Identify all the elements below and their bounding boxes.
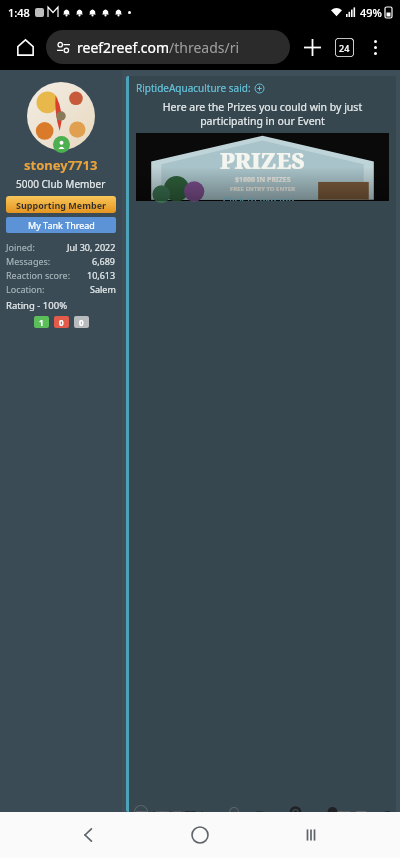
- button[interactable]: Tabs: 24: [328, 31, 360, 63]
- staticText: 10,613: [87, 269, 116, 281]
- staticText: 6,689: [92, 255, 116, 267]
- staticText: stoney7713: [24, 156, 98, 174]
- staticText: /threads/ri: [169, 38, 240, 57]
- staticText: 0: [59, 317, 64, 328]
- staticText: Rating - 100%: [6, 299, 68, 312]
- button[interactable]: Home: [178, 813, 222, 857]
- button[interactable]: Back: [67, 813, 111, 857]
- button[interactable]: PRIZES: [136, 133, 389, 201]
- staticText: 5000 Club Member: [16, 177, 106, 191]
- staticText: Location:: [6, 283, 45, 295]
- staticText: Reaction score:: [6, 269, 71, 281]
- staticText: 0: [79, 317, 84, 328]
- staticText: Supporting Member: [16, 199, 107, 211]
- button[interactable]: Supporting Member: [6, 196, 116, 213]
- button[interactable]: Recent apps: [289, 813, 333, 857]
- staticText: 49%: [360, 5, 382, 20]
- staticText: Click to expand...: [223, 194, 303, 201]
- staticText: PRIZES: [220, 145, 305, 175]
- staticText: $1600 IN PRIZES: [235, 175, 291, 185]
- staticText: FREE ENTRY TO ENTER: [230, 185, 296, 193]
- button[interactable]: Home: [10, 32, 40, 62]
- button[interactable]: 0: [74, 316, 89, 328]
- staticText: My Tank Thread: [28, 219, 95, 231]
- button[interactable]: reef2reef.com: [46, 30, 290, 64]
- staticText: reef2reef.com: [77, 38, 169, 57]
- staticText: Joined:: [6, 241, 35, 253]
- staticText: Jul 30, 2022: [67, 241, 116, 253]
- button[interactable]: New tab: [296, 31, 328, 63]
- button[interactable]: 1: [34, 316, 49, 328]
- staticText: 1: [39, 317, 44, 328]
- button[interactable]: Avatar: [27, 82, 95, 150]
- staticText: 1:48: [8, 5, 30, 20]
- button[interactable]: More options: [360, 32, 390, 62]
- staticText: RiptideAquaculture said:: [136, 81, 251, 95]
- staticText: Salem: [90, 283, 116, 295]
- staticText: Messages:: [6, 255, 51, 267]
- staticText: 24: [339, 42, 350, 54]
- button[interactable]: My Tank Thread: [6, 217, 116, 233]
- staticText: Here are the Prizes you could win by jus…: [136, 100, 389, 128]
- button[interactable]: 0: [54, 316, 69, 328]
